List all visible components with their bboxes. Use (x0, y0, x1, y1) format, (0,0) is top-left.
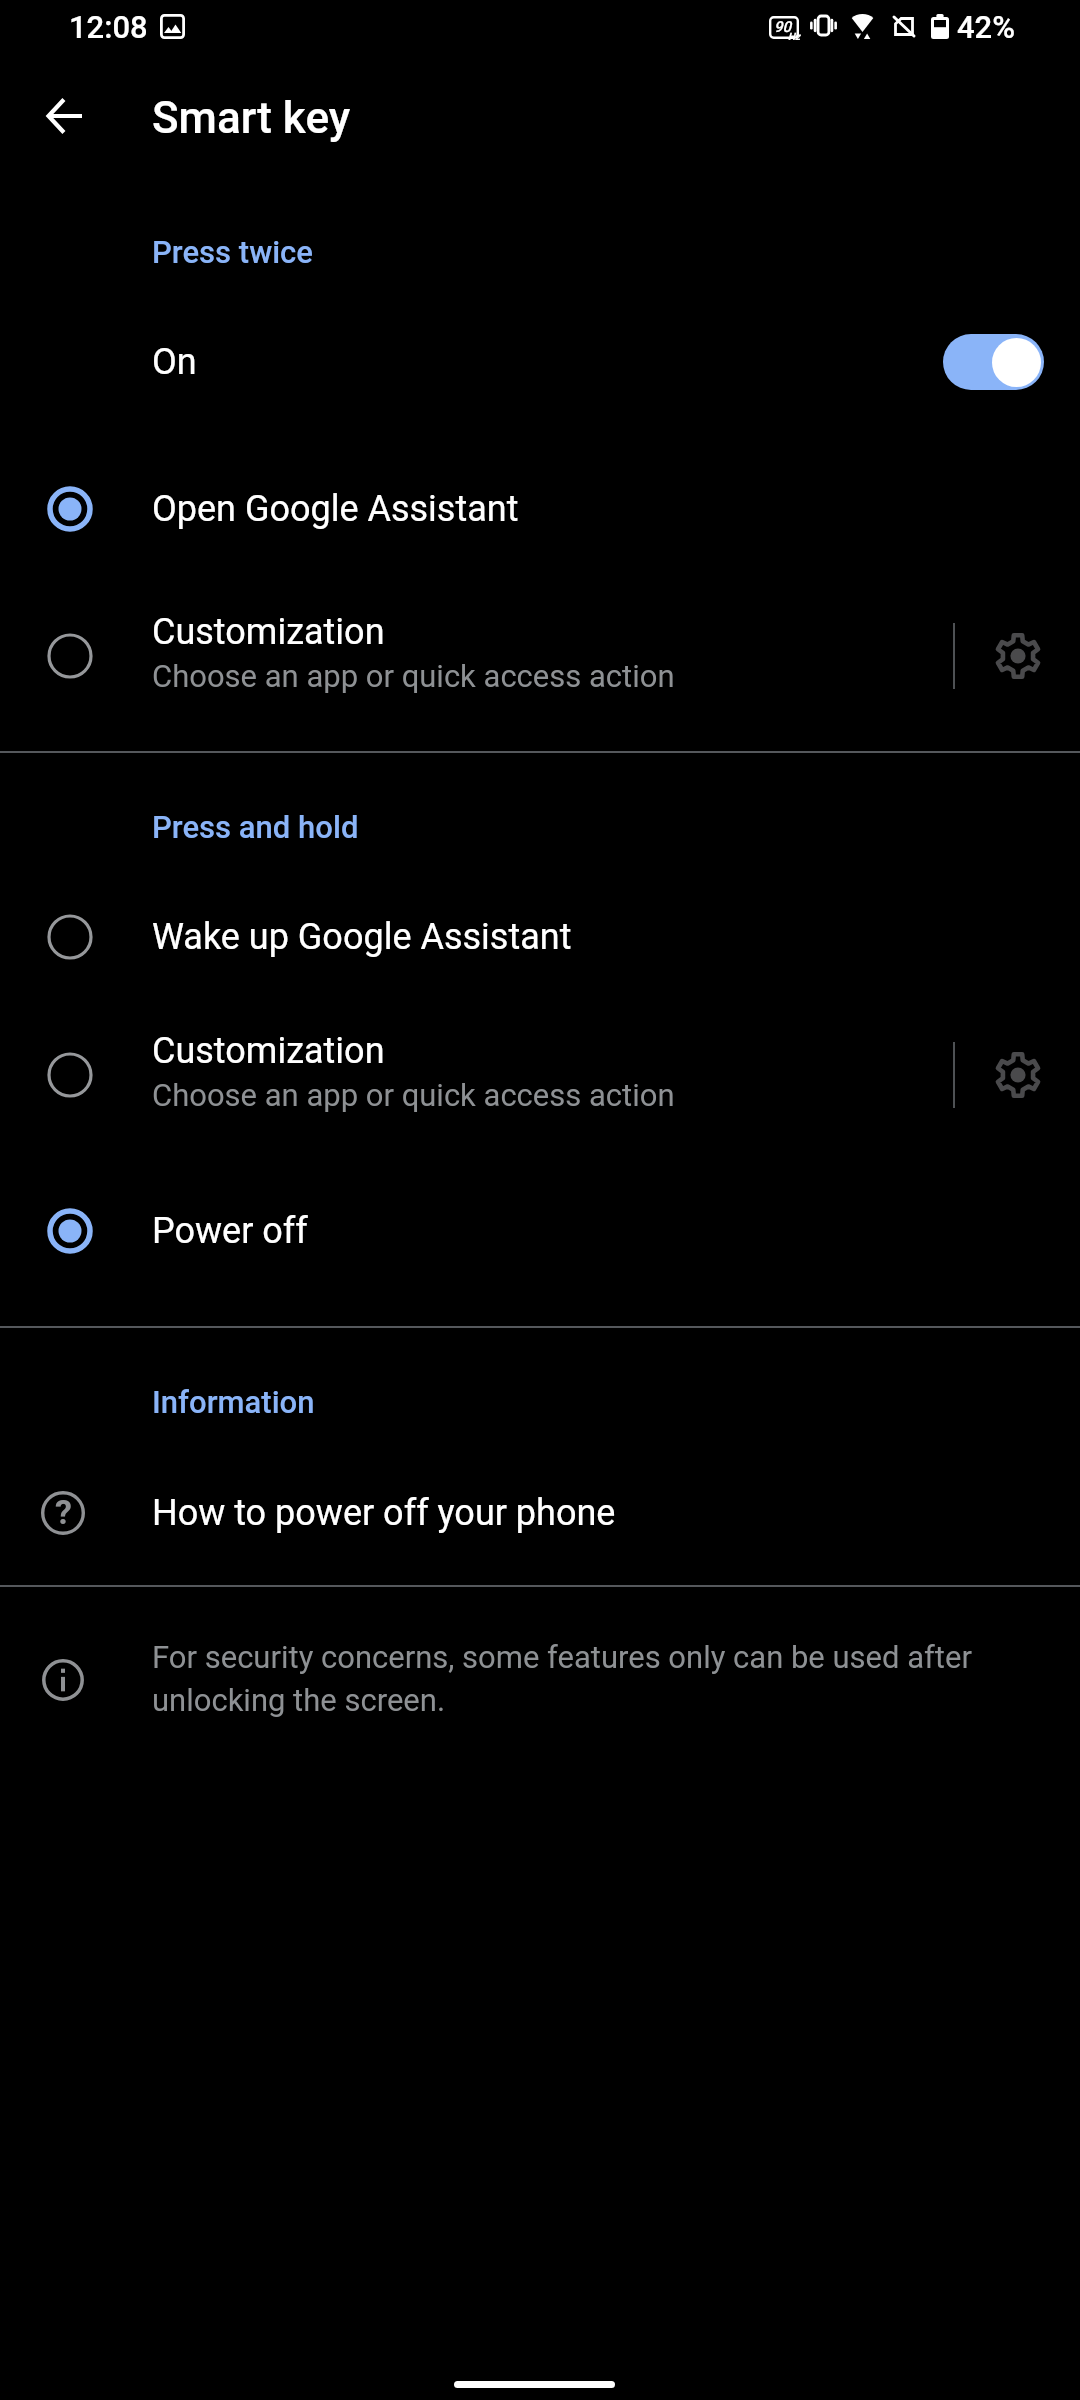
button[interactable]: ? (0, 1452, 1080, 1574)
button[interactable]: Open Google Assistant (0, 461, 1080, 557)
staticText: 90 (774, 18, 792, 36)
staticText: On (152, 341, 197, 383)
staticText: Choose an app or quick access action (152, 658, 675, 694)
staticText: Wake up Google Assistant (152, 916, 572, 958)
button[interactable]: Power off (0, 1183, 1080, 1279)
staticText: Information (152, 1384, 315, 1420)
button[interactable]: Customization (0, 591, 950, 721)
staticText: Press and hold (152, 809, 359, 845)
button[interactable]: Customization settings 1 (955, 591, 1080, 721)
staticText: Open Google Assistant (152, 488, 519, 530)
button[interactable]: Customization settings 2 (955, 1010, 1080, 1140)
staticText: Power off (152, 1210, 308, 1252)
staticText: Choose an app or quick access action (152, 1077, 675, 1113)
staticText: For security concerns, some features onl… (152, 1639, 992, 1719)
button[interactable]: Back (21, 72, 108, 159)
staticText: 42% (957, 9, 1016, 45)
staticText: How to power off your phone (152, 1492, 616, 1534)
staticText: 12:08 (69, 9, 148, 45)
staticText: Smart key (152, 92, 351, 144)
staticText: ? (55, 1492, 72, 1532)
staticText: Press twice (152, 234, 313, 270)
staticText: Hz (788, 31, 801, 43)
staticText: Customization (152, 611, 385, 653)
staticText: Customization (152, 1030, 385, 1072)
button[interactable]: On (0, 306, 1080, 418)
button[interactable]: Customization (0, 1010, 950, 1140)
button[interactable]: Wake up Google Assistant (0, 889, 1080, 985)
